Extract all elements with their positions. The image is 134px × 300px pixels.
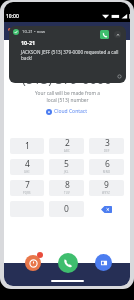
staticText: 9: [104, 180, 109, 191]
button[interactable]: 4: [10, 159, 44, 175]
button[interactable]: 8: [49, 180, 84, 196]
button[interactable]: Contacts: [95, 254, 112, 271]
button[interactable]: Answer: [100, 30, 109, 39]
staticText: 7: [25, 180, 30, 191]
button[interactable]: Cloud Contact: [43, 107, 91, 116]
staticText: TUV: [64, 191, 70, 195]
button[interactable]: 2: [49, 138, 84, 154]
staticText: 4: [25, 159, 30, 170]
staticText: 2: [65, 138, 70, 149]
staticText: Your call will be made from a local (513…: [35, 90, 100, 103]
staticText: 6: [105, 159, 110, 170]
staticText: ABC: [64, 149, 70, 153]
staticText: MNO: [103, 170, 111, 174]
button[interactable]: Recents: [25, 255, 41, 271]
staticText: 0: [64, 203, 69, 215]
staticText: 8: [65, 180, 70, 191]
staticText: 3: [105, 138, 110, 149]
button[interactable]: 0: [49, 201, 84, 217]
staticText: JKL: [64, 170, 69, 174]
staticText: JACKSON JEFF (513) 379-0000 requested a …: [21, 49, 119, 61]
button[interactable]: Backspace: [89, 201, 124, 217]
staticText: DEF: [104, 149, 110, 153]
button[interactable]: 1: [10, 138, 44, 154]
button[interactable]: Collapse: [114, 31, 121, 38]
button[interactable]: Call: [58, 253, 78, 273]
button[interactable]: 3: [89, 138, 124, 154]
button[interactable]: 5: [49, 159, 84, 175]
staticText: PQRS: [23, 191, 31, 195]
staticText: (513) 379-0000: [22, 70, 112, 88]
staticText: WXYZ: [102, 191, 111, 195]
staticText: 5: [64, 159, 69, 170]
button[interactable]: 6: [89, 159, 124, 175]
staticText: 10-21 • now: [22, 29, 46, 35]
staticText: GHI: [24, 170, 30, 174]
button[interactable]: Notification settings: [117, 74, 122, 79]
staticText: 10:00: [6, 13, 19, 20]
button[interactable]: 9: [89, 180, 124, 196]
button[interactable]: 7: [10, 180, 44, 196]
staticText: Cloud Contact: [54, 108, 88, 115]
staticText: 1: [25, 140, 30, 152]
staticText: 10-21: [21, 39, 36, 46]
